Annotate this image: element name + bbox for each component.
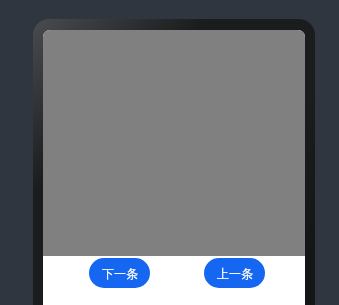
staticText: 下一条 <box>102 266 138 281</box>
button[interactable]: 下一条 <box>89 258 150 288</box>
button[interactable]: 上一条 <box>204 258 265 288</box>
staticText: 上一条 <box>217 266 253 281</box>
